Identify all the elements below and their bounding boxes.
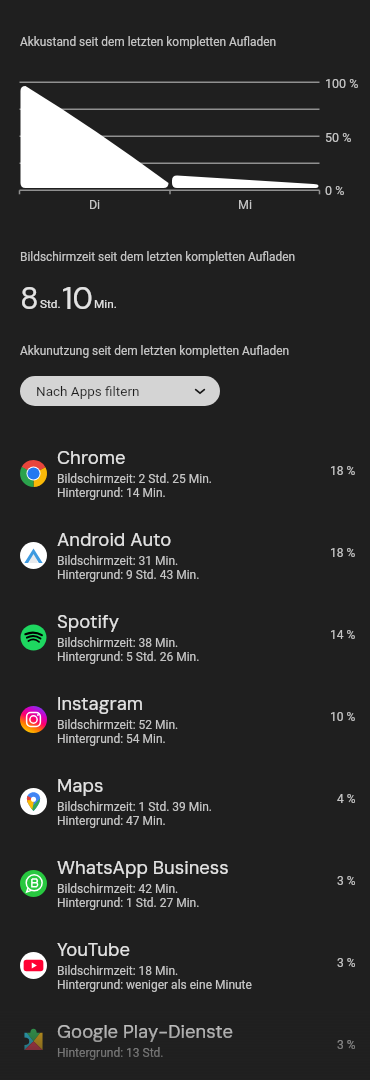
- staticText: 50 %: [325, 130, 352, 145]
- button[interactable]: Maps: [0, 758, 370, 840]
- staticText: Mi: [170, 197, 320, 212]
- staticText: Android Auto: [57, 528, 172, 552]
- staticText: Hintergrund: 54 Min.: [57, 732, 166, 746]
- staticText: 8: [20, 278, 39, 318]
- staticText: Google Play-Dienste: [57, 1020, 233, 1044]
- staticText: Maps: [57, 774, 104, 798]
- staticText: 18 %: [330, 464, 356, 478]
- button[interactable]: YouTube: [0, 922, 370, 1004]
- staticText: 3 %: [337, 874, 356, 888]
- staticText: Bildschirmzeit: 2 Std. 25 Min.: [57, 472, 212, 486]
- staticText: Bildschirmzeit: 42 Min.: [57, 882, 179, 896]
- button[interactable]: WhatsApp Business: [0, 840, 370, 922]
- staticText: WhatsApp Business: [57, 856, 229, 880]
- staticText: Akkustand seit dem letzten kompletten Au…: [20, 35, 277, 49]
- staticText: 14 %: [330, 628, 356, 642]
- staticText: Hintergrund: 1 Std. 27 Min.: [57, 896, 200, 910]
- staticText: Spotify: [57, 610, 119, 634]
- staticText: 18 %: [330, 546, 356, 560]
- staticText: Nach Apps filtern: [36, 383, 140, 399]
- staticText: 3 %: [337, 956, 356, 970]
- button[interactable]: Nach Apps filtern: [20, 376, 220, 406]
- staticText: 100 %: [325, 76, 359, 91]
- staticText: Std.: [40, 297, 61, 311]
- staticText: Hintergrund: 14 Min.: [57, 486, 166, 500]
- staticText: Hintergrund: 5 Std. 26 Min.: [57, 650, 200, 664]
- staticText: 4 %: [337, 792, 356, 806]
- button[interactable]: Spotify: [0, 594, 370, 676]
- staticText: Instagram: [57, 692, 144, 716]
- staticText: Hintergrund: 9 Std. 43 Min.: [57, 568, 200, 582]
- staticText: 3 %: [337, 1038, 356, 1052]
- button[interactable]: Android Auto: [0, 512, 370, 594]
- staticText: Hintergrund: 13 Std.: [57, 1046, 164, 1060]
- staticText: Di: [19, 197, 170, 212]
- staticText: Bildschirmzeit: 31 Min.: [57, 554, 179, 568]
- staticText: Hintergrund: 47 Min.: [57, 814, 166, 828]
- staticText: Bildschirmzeit seit dem letzten komplett…: [20, 250, 296, 264]
- staticText: 10 %: [330, 710, 356, 724]
- staticText: Akkunutzung seit dem letzten kompletten …: [20, 344, 290, 358]
- button[interactable]: Chrome: [0, 430, 370, 512]
- button[interactable]: Google Play-Dienste: [0, 1004, 370, 1080]
- staticText: Bildschirmzeit: 18 Min.: [57, 964, 179, 978]
- staticText: Min.: [94, 297, 117, 311]
- staticText: Chrome: [57, 446, 126, 470]
- staticText: Bildschirmzeit: 38 Min.: [57, 636, 179, 650]
- staticText: Bildschirmzeit: 1 Std. 39 Min.: [57, 800, 212, 814]
- staticText: 0 %: [325, 183, 345, 198]
- button[interactable]: Instagram: [0, 676, 370, 758]
- staticText: Hintergrund: weniger als eine Minute: [57, 978, 252, 992]
- staticText: Bildschirmzeit: 52 Min.: [57, 718, 179, 732]
- staticText: 10: [62, 278, 93, 318]
- staticText: YouTube: [57, 938, 131, 962]
